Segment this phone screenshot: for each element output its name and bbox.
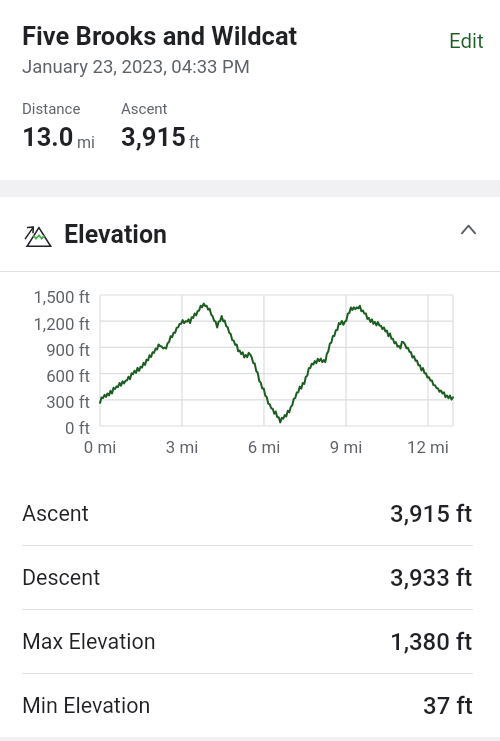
staticText: Distance bbox=[22, 100, 81, 118]
staticText: 6 mi bbox=[224, 437, 304, 457]
staticText: 37 ft bbox=[423, 692, 473, 720]
button[interactable]: Elevation bbox=[0, 197, 500, 271]
button[interactable]: Edit bbox=[449, 29, 484, 53]
staticText: January 23, 2023, 04:33 PM bbox=[22, 56, 250, 78]
staticText: Ascent bbox=[121, 100, 168, 118]
staticText: 0 ft bbox=[0, 418, 90, 438]
staticText: Min Elevation bbox=[22, 693, 151, 718]
button[interactable]: Descent bbox=[0, 546, 500, 609]
staticText: Elevation bbox=[64, 220, 168, 249]
button[interactable]: Min Elevation bbox=[0, 674, 500, 737]
staticText: Five Brooks and Wildcat bbox=[22, 21, 298, 51]
button[interactable]: Collapse elevation section bbox=[448, 209, 488, 249]
staticText: 12 mi bbox=[388, 437, 468, 457]
staticText: 300 ft bbox=[0, 392, 90, 412]
staticText: Descent bbox=[22, 565, 101, 590]
staticText: Ascent bbox=[22, 501, 89, 526]
button[interactable]: Ascent bbox=[0, 482, 500, 545]
staticText: 0 mi bbox=[60, 437, 140, 457]
staticText: ft bbox=[189, 133, 200, 152]
staticText: 9 mi bbox=[306, 437, 386, 457]
staticText: mi bbox=[77, 133, 95, 152]
staticText: 13.0 bbox=[22, 122, 74, 152]
staticText: Edit bbox=[449, 29, 484, 53]
staticText: 600 ft bbox=[0, 366, 90, 386]
staticText: 3,915 ft bbox=[390, 500, 473, 528]
staticText: 3,915 bbox=[121, 122, 186, 152]
staticText: 3 mi bbox=[142, 437, 222, 457]
staticText: 1,380 ft bbox=[390, 628, 473, 656]
staticText: Max Elevation bbox=[22, 629, 156, 654]
button[interactable]: Max Elevation bbox=[0, 610, 500, 673]
staticText: 1,200 ft bbox=[0, 314, 90, 334]
staticText: 1,500 ft bbox=[0, 287, 90, 307]
staticText: 900 ft bbox=[0, 340, 90, 360]
staticText: 3,933 ft bbox=[390, 564, 473, 592]
